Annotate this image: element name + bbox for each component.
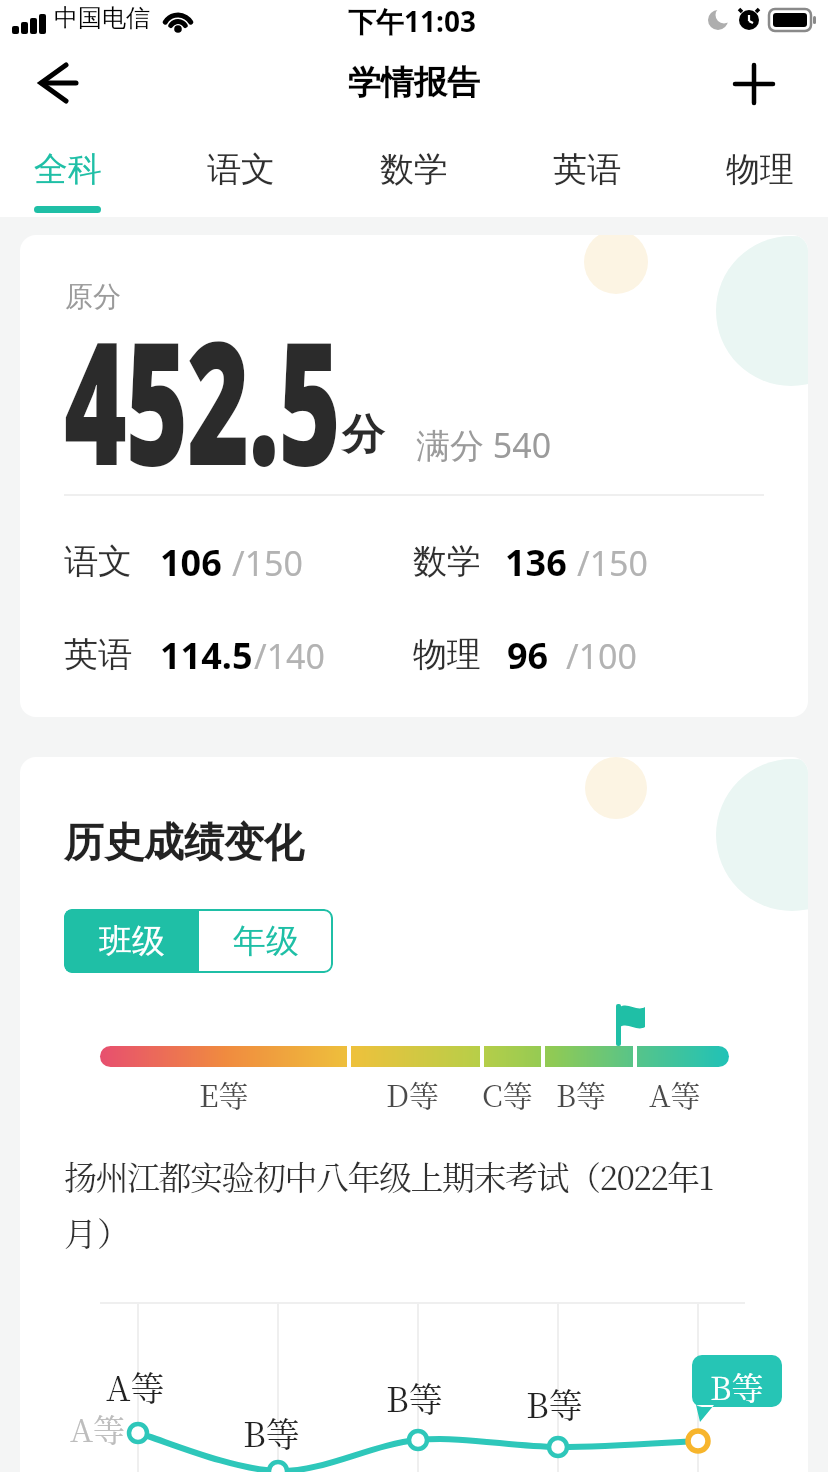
button[interactable]: 班级 bbox=[64, 909, 199, 973]
staticText: /150 bbox=[577, 540, 648, 586]
staticText: 原分 bbox=[65, 279, 121, 314]
staticText: 英语 bbox=[553, 148, 621, 191]
staticText: A等 bbox=[649, 1072, 701, 1115]
staticText: 136 bbox=[505, 538, 567, 587]
staticText: 月） bbox=[64, 1208, 130, 1255]
staticText: /150 bbox=[232, 540, 303, 586]
staticText: 数学 bbox=[413, 540, 481, 583]
staticText: 满分 540 bbox=[416, 422, 552, 468]
staticText: 452.5 bbox=[64, 283, 340, 515]
staticText: 英语 bbox=[64, 633, 132, 676]
button[interactable] bbox=[724, 54, 784, 114]
staticText: 中国电信 bbox=[54, 3, 150, 33]
staticText: 分 bbox=[342, 409, 384, 462]
staticText: B等 bbox=[710, 1363, 764, 1409]
staticText: /140 bbox=[254, 633, 325, 679]
staticText: B等 bbox=[386, 1373, 443, 1422]
staticText: B等 bbox=[526, 1379, 583, 1428]
staticText: 历史成绩变化 bbox=[64, 817, 304, 867]
staticText: D等 bbox=[386, 1072, 440, 1115]
staticText: /100 bbox=[566, 633, 637, 679]
staticText: 物理 bbox=[726, 148, 794, 191]
staticText: 全科 bbox=[34, 148, 102, 191]
staticText: 扬州江都实验初中八年级上期末考试（2022年1 bbox=[64, 1152, 713, 1199]
staticText: B等 bbox=[556, 1072, 607, 1115]
staticText: A等 bbox=[70, 1405, 125, 1451]
button[interactable]: 语文 bbox=[141, 148, 341, 191]
staticText: 语文 bbox=[207, 148, 275, 191]
staticText: A等 bbox=[106, 1362, 165, 1411]
staticText: 语文 bbox=[64, 540, 132, 583]
staticText: C等 bbox=[482, 1072, 533, 1115]
staticText: 数学 bbox=[380, 148, 448, 191]
staticText: 年级 bbox=[233, 920, 299, 962]
staticText: 下午11:03 bbox=[348, 2, 476, 40]
button[interactable] bbox=[28, 54, 88, 114]
staticText: 班级 bbox=[99, 920, 165, 962]
staticText: 114.5 bbox=[160, 631, 253, 680]
button[interactable]: 年级 bbox=[199, 909, 333, 973]
staticText: 学情报告 bbox=[348, 62, 480, 104]
staticText: 物理 bbox=[413, 633, 481, 676]
button[interactable]: 英语 bbox=[487, 148, 687, 191]
staticText: B等 bbox=[243, 1408, 300, 1457]
staticText: 106 bbox=[160, 538, 222, 587]
button[interactable]: 物理 bbox=[660, 148, 828, 191]
staticText: E等 bbox=[199, 1072, 249, 1115]
button[interactable]: 全科 bbox=[0, 148, 168, 191]
button[interactable]: 数学 bbox=[314, 148, 514, 191]
staticText: 96 bbox=[507, 631, 549, 680]
